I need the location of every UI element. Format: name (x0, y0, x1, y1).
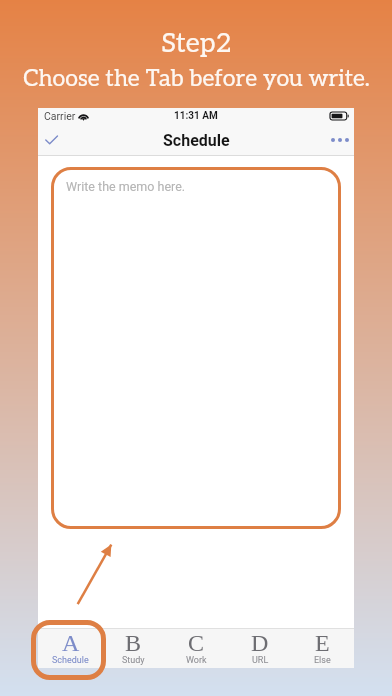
staticText: 11:31 AM (174, 110, 218, 122)
button[interactable]: B (102, 628, 165, 668)
staticText: Work (186, 655, 207, 666)
staticText: URL (252, 655, 269, 666)
button[interactable]: A (38, 628, 102, 668)
staticText: Carrier (44, 110, 76, 122)
staticText: Schedule (163, 131, 230, 150)
staticText: C (188, 630, 205, 657)
staticText: B (125, 630, 142, 657)
staticText: Study (122, 655, 145, 666)
staticText: Schedule (52, 655, 89, 666)
staticText: Step2 (161, 28, 232, 60)
button[interactable]: C (165, 628, 228, 668)
button[interactable]: Done (38, 128, 64, 152)
button[interactable]: D (228, 628, 291, 668)
button[interactable]: Write the memo here. (51, 167, 341, 529)
staticText: Write the memo here. (66, 179, 186, 194)
button[interactable]: More options (326, 128, 354, 152)
staticText: D (251, 630, 269, 657)
staticText: Choose the Tab before you write. (23, 65, 370, 93)
staticText: A (62, 630, 80, 657)
staticText: Else (314, 655, 331, 666)
button[interactable]: E (291, 628, 354, 668)
staticText: E (315, 630, 330, 657)
button[interactable]: Schedule tab highlight (31, 620, 106, 680)
